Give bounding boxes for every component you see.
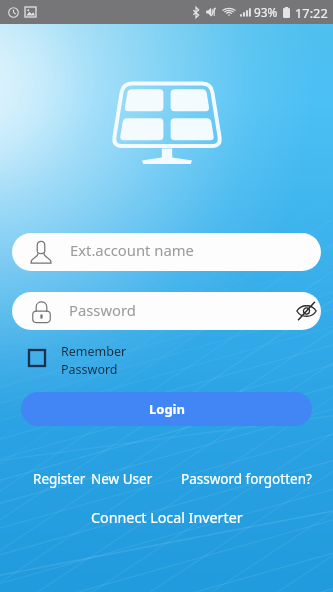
button[interactable]: Password forgotten?: [181, 470, 312, 488]
staticText: 17:22: [295, 4, 328, 21]
button[interactable]: Password: [12, 292, 321, 330]
staticText: Password: [61, 361, 118, 378]
button[interactable]: New User: [91, 470, 153, 488]
staticText: Remember: [61, 343, 127, 360]
button[interactable]: Ext.account name: [12, 233, 321, 271]
button[interactable]: Show password: [288, 293, 321, 329]
button[interactable]: Register: [33, 470, 86, 488]
staticText: Ext.account name: [70, 240, 194, 260]
staticText: Login: [149, 400, 185, 418]
button[interactable]: Remember: [29, 343, 127, 378]
staticText: 93%: [254, 4, 278, 20]
staticText: Password: [69, 300, 285, 320]
button[interactable]: Login: [21, 392, 312, 426]
button[interactable]: Connect Local Inverter: [91, 508, 243, 527]
